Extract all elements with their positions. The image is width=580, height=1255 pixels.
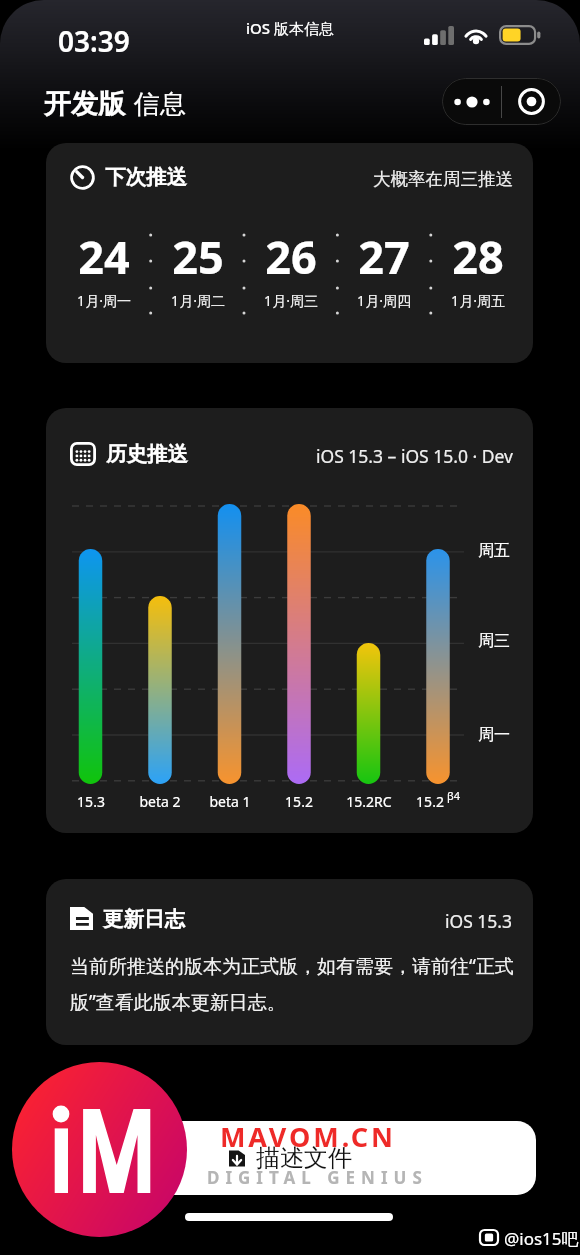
staticText: beta 2 [139,792,181,811]
staticText: iOS 版本信息 [246,18,334,38]
button[interactable]: 历史推送 [46,408,533,833]
staticText: @ios15吧 [504,1227,579,1250]
staticText: 28 [452,226,504,287]
staticText: 当前所推送的版本为正式版，如有需要，请前往“正式版”查看此版本更新日志。 [70,953,522,1015]
staticText: 26 [265,226,317,287]
staticText: 历史推送 [106,441,188,467]
staticText: 1月·周一 [77,291,131,310]
staticText: 大概率在周三推送 [373,168,513,190]
staticText: 1月·周四 [357,291,411,310]
staticText: β4 [447,788,461,803]
button[interactable]: 更新日志 [46,879,533,1045]
staticText: 03:39 [58,22,130,60]
staticText: iOS 15.3 [445,909,513,933]
staticText: 1月·周三 [264,291,318,310]
staticText: 周五 [478,541,510,561]
staticText: 15.2 [416,792,444,811]
staticText: 下次推送 [105,164,187,190]
button[interactable]: 描述文件 [44,1121,536,1195]
staticText: 开发版 [44,87,125,121]
staticText: 24 [78,226,130,287]
staticText: 15.2RC [346,792,392,811]
staticText: 15.2 [285,792,313,811]
button[interactable]: 下次推送 [46,143,533,363]
staticText: beta 1 [209,792,251,811]
staticText: MAVOM.CN [220,1118,396,1155]
button[interactable]: More [442,78,501,125]
staticText: 1月·周五 [451,291,505,310]
staticText: 周一 [478,725,510,745]
button[interactable]: Close [502,78,561,125]
staticText: 描述文件 [256,1143,352,1173]
staticText: 更新日志 [103,906,185,932]
staticText: 周三 [478,631,510,651]
staticText: DIGITAL GENIUS [207,1166,428,1189]
staticText: 1月·周二 [171,291,225,310]
staticText: 信息 [134,88,186,121]
staticText: 27 [358,226,410,287]
staticText: 15.3 [77,792,105,811]
staticText: 25 [172,226,224,287]
staticText: iOS 15.3 – iOS 15.0 · Dev [316,444,513,468]
